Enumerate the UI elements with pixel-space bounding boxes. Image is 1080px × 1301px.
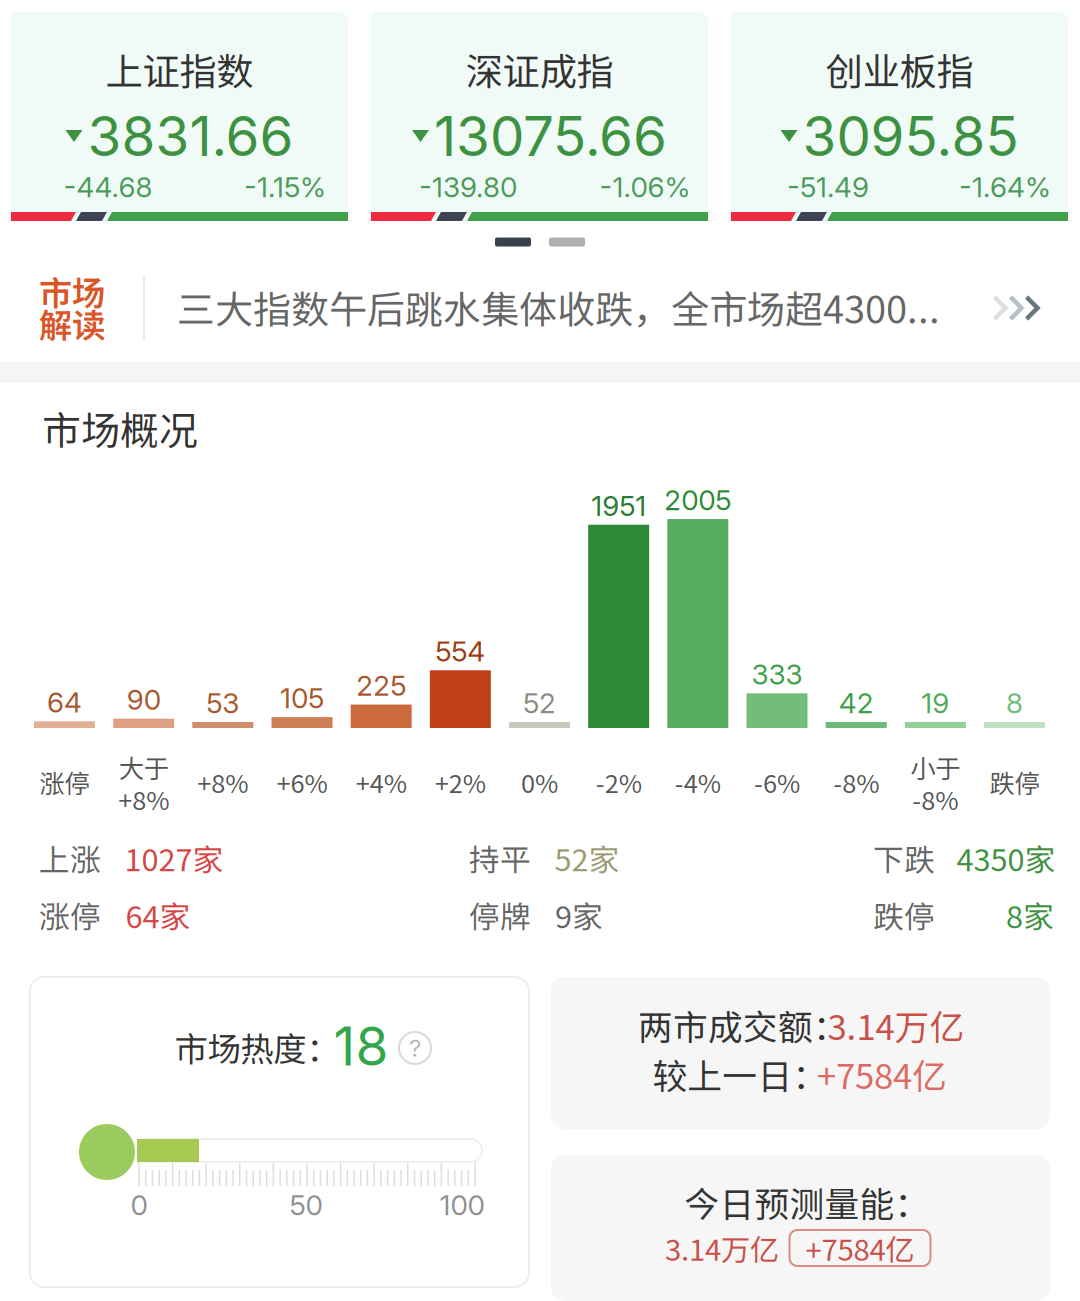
staticText: +6% bbox=[276, 764, 327, 800]
staticText: 4350家 bbox=[956, 836, 1055, 880]
staticText: 较上一日： bbox=[652, 1049, 827, 1099]
staticText: -1.06% bbox=[599, 170, 690, 204]
staticText: 3.14万亿 bbox=[827, 1000, 964, 1050]
staticText: +2% bbox=[435, 764, 486, 800]
staticText: 18 bbox=[333, 1014, 388, 1078]
staticText: 50 bbox=[289, 1188, 322, 1222]
staticText: 105 bbox=[280, 681, 324, 715]
staticText: 创业板指 bbox=[825, 42, 973, 96]
staticText: 0 bbox=[130, 1188, 147, 1222]
staticText: 3095.85 bbox=[802, 103, 1018, 169]
staticText: 90 bbox=[127, 683, 161, 717]
staticText: 225 bbox=[356, 669, 406, 702]
staticText: -139.80 bbox=[419, 170, 517, 204]
staticText: 52家 bbox=[554, 836, 619, 880]
staticText: -6% bbox=[754, 764, 800, 800]
staticText: 64家 bbox=[125, 893, 190, 937]
button[interactable]: 深证成指 bbox=[371, 12, 708, 220]
staticText: -8% bbox=[833, 764, 879, 800]
staticText: 跌停 bbox=[989, 764, 1039, 800]
staticText: 19 bbox=[921, 686, 949, 720]
staticText: -51.49 bbox=[787, 170, 869, 204]
staticText: 解读 bbox=[39, 299, 105, 347]
button[interactable]: 上证指数 bbox=[11, 12, 348, 220]
staticText: +4% bbox=[356, 764, 407, 800]
staticText: 42 bbox=[839, 686, 874, 720]
staticText: 市场热度： bbox=[174, 1023, 339, 1071]
staticText: 8家 bbox=[1006, 893, 1054, 937]
staticText: 0% bbox=[521, 764, 558, 800]
staticText: 2005 bbox=[664, 483, 731, 517]
staticText: 下跌 bbox=[873, 836, 935, 880]
staticText: -2% bbox=[596, 764, 642, 800]
staticText: 持平 bbox=[469, 836, 531, 880]
staticText: 市场概况 bbox=[42, 400, 198, 456]
staticText: 涨停 bbox=[39, 893, 101, 937]
staticText: -1.15% bbox=[244, 170, 326, 204]
button[interactable]: 市场热度说明 bbox=[397, 1030, 433, 1066]
staticText: 小于 bbox=[910, 749, 960, 785]
staticText: -8% bbox=[912, 781, 958, 817]
staticText: 两市成交额： bbox=[638, 1000, 848, 1050]
staticText: -44.68 bbox=[63, 170, 152, 204]
staticText: 1027家 bbox=[124, 836, 223, 880]
button[interactable]: 创业板指 bbox=[731, 12, 1068, 220]
staticText: +7584亿 bbox=[805, 1227, 914, 1269]
staticText: 今日预测量能： bbox=[684, 1177, 929, 1227]
staticText: 深证成指 bbox=[465, 42, 613, 96]
staticText: ? bbox=[409, 1033, 421, 1062]
staticText: +7584亿 bbox=[817, 1049, 947, 1099]
staticText: -1.64% bbox=[959, 170, 1051, 204]
staticText: 涨停 bbox=[39, 764, 89, 800]
staticText: 1951 bbox=[591, 489, 646, 523]
staticText: +8% bbox=[118, 781, 169, 817]
staticText: 8 bbox=[1006, 686, 1023, 720]
staticText: 上证指数 bbox=[105, 42, 253, 96]
staticText: 64 bbox=[47, 685, 82, 719]
button[interactable] bbox=[30, 977, 529, 1287]
button[interactable]: 市场 bbox=[0, 257, 1080, 357]
staticText: 市场 bbox=[39, 267, 105, 315]
staticText: 跌停 bbox=[873, 893, 935, 937]
staticText: 52 bbox=[523, 686, 556, 720]
staticText: 100 bbox=[439, 1188, 484, 1222]
staticText: 3.14万亿 bbox=[665, 1227, 779, 1269]
staticText: 13075.66 bbox=[434, 103, 667, 169]
button[interactable]: 两市成交额： bbox=[551, 977, 1050, 1129]
staticText: 3831.66 bbox=[87, 103, 293, 169]
staticText: 大于 bbox=[119, 749, 169, 785]
staticText: 停牌 bbox=[469, 893, 531, 937]
button[interactable]: 今日预测量能： bbox=[551, 1155, 1050, 1301]
staticText: 上涨 bbox=[39, 836, 101, 880]
staticText: 53 bbox=[206, 686, 239, 720]
staticText: 333 bbox=[751, 657, 802, 691]
staticText: 9家 bbox=[555, 893, 603, 937]
staticText: +8% bbox=[197, 764, 248, 800]
staticText: 554 bbox=[435, 634, 485, 668]
staticText: -4% bbox=[675, 764, 721, 800]
staticText: 三大指数午后跳水集体收跌，全市场超4300... bbox=[177, 279, 940, 334]
